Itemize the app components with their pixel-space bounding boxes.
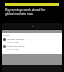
- staticText: Market update: [7, 37, 25, 40]
- staticText: 8 min ago: [7, 47, 19, 50]
- button[interactable]: Market update: [2, 36, 62, 43]
- staticText: Big earnings week ahead for: [5, 8, 46, 12]
- button[interactable]: [2, 23, 62, 29]
- staticText: global markets now: [5, 12, 33, 16]
- staticText: Today: [3, 33, 10, 36]
- staticText: 2 min ago: [7, 40, 19, 43]
- staticText: Earnings recap: [7, 44, 25, 47]
- button[interactable]: Earnings recap: [2, 43, 62, 50]
